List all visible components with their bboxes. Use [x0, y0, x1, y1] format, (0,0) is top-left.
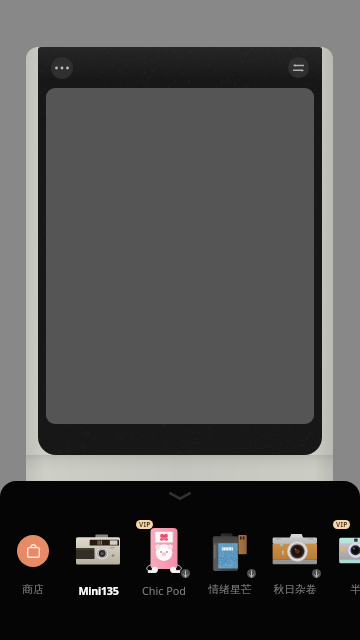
staticText: 半格	[350, 583, 360, 597]
button[interactable]: Collapse panel	[158, 484, 202, 508]
staticText: 情绪星芒	[208, 583, 252, 597]
staticText: Mini135	[78, 583, 119, 598]
button[interactable]: Switch camera	[288, 57, 309, 78]
button[interactable]: 商店	[1, 518, 65, 598]
button[interactable]: VIP	[329, 518, 360, 598]
button[interactable]: 秋日杂卷	[263, 518, 327, 598]
button[interactable]: More options	[51, 57, 73, 79]
button[interactable]: Mini135	[66, 518, 130, 598]
staticText: VIP	[139, 520, 151, 529]
staticText: VIP	[336, 520, 348, 529]
staticText: Chic Pod	[142, 583, 186, 598]
button[interactable]: VIP	[132, 518, 196, 598]
staticText: 秋日杂卷	[273, 583, 317, 597]
button[interactable]: 情绪星芒	[198, 518, 262, 598]
staticText: 商店	[22, 583, 44, 597]
